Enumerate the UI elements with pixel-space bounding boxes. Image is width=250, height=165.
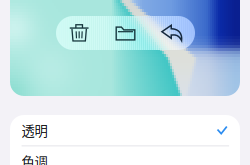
button[interactable]: 透明 (10, 115, 240, 145)
button[interactable]: 色调 (10, 146, 240, 165)
staticText: 透明 (22, 120, 48, 140)
button[interactable]: Move to folder (102, 16, 149, 50)
button[interactable]: Delete (56, 16, 102, 50)
staticText: 色调 (22, 152, 48, 165)
button[interactable]: Undo (149, 16, 195, 50)
